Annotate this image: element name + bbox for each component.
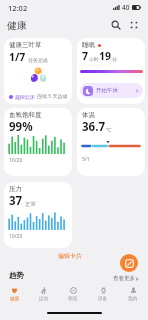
staticText: 我的 bbox=[128, 296, 138, 302]
button[interactable]: 运动 bbox=[29, 286, 58, 302]
staticText: 37 bbox=[9, 193, 23, 209]
staticText: 1/7 bbox=[9, 50, 26, 64]
staticText: 健康三叶草 bbox=[9, 41, 42, 49]
staticText: 编辑卡片 bbox=[58, 252, 82, 260]
button[interactable]: 睡眠 bbox=[77, 38, 145, 104]
staticText: 10/20 bbox=[9, 233, 23, 240]
staticText: ℃ bbox=[106, 126, 112, 133]
staticText: 规律起床 bbox=[15, 94, 35, 100]
button[interactable]: 体温 bbox=[77, 108, 145, 176]
staticText: 压力 bbox=[9, 185, 22, 193]
staticText: 血氧饱和度 bbox=[9, 111, 42, 119]
staticText: 开始午休 bbox=[96, 87, 118, 94]
staticText: 12:02 bbox=[8, 3, 28, 13]
staticText: 连续 5 天达成 bbox=[37, 93, 68, 100]
staticText: 10/20 bbox=[9, 157, 23, 164]
staticText: 任务完成 bbox=[28, 57, 48, 63]
staticText: 分 bbox=[112, 56, 117, 62]
button[interactable]: 开始午休 bbox=[80, 83, 143, 98]
staticText: 5/1 bbox=[82, 156, 90, 163]
button[interactable]: 健康三叶草 bbox=[4, 38, 72, 104]
staticText: 健康 bbox=[7, 19, 27, 32]
staticText: 40 bbox=[122, 3, 130, 12]
button[interactable]: 编辑卡片 bbox=[55, 251, 85, 261]
button[interactable]: Search bbox=[107, 16, 125, 34]
button[interactable]: 查看更多 bbox=[112, 274, 140, 283]
staticText: 睡眠 bbox=[82, 41, 95, 49]
staticText: 正常 bbox=[25, 201, 36, 208]
staticText: 7 bbox=[82, 49, 89, 63]
button[interactable]: 血氧饱和度 bbox=[4, 108, 72, 176]
staticText: 体温 bbox=[82, 111, 95, 119]
staticText: 小时 bbox=[89, 56, 99, 62]
button[interactable]: More options bbox=[125, 16, 143, 34]
staticText: 99% bbox=[9, 119, 33, 135]
staticText: 查看更多 bbox=[113, 275, 135, 282]
staticText: 健康 bbox=[10, 296, 20, 302]
staticText: 运动 bbox=[39, 296, 49, 302]
staticText: 19 bbox=[99, 49, 112, 63]
button[interactable]: Add record bbox=[120, 254, 138, 272]
staticText: 发现 bbox=[68, 296, 78, 302]
button[interactable]: 设备 bbox=[88, 286, 118, 302]
button[interactable]: 压力 bbox=[4, 182, 72, 248]
button[interactable]: 我的 bbox=[118, 286, 148, 302]
staticText: 趋势 bbox=[9, 271, 24, 280]
staticText: 36.7 bbox=[82, 119, 105, 135]
staticText: 设备 bbox=[98, 296, 108, 302]
button[interactable]: 健康 bbox=[0, 286, 29, 302]
button[interactable]: 发现 bbox=[58, 286, 88, 302]
